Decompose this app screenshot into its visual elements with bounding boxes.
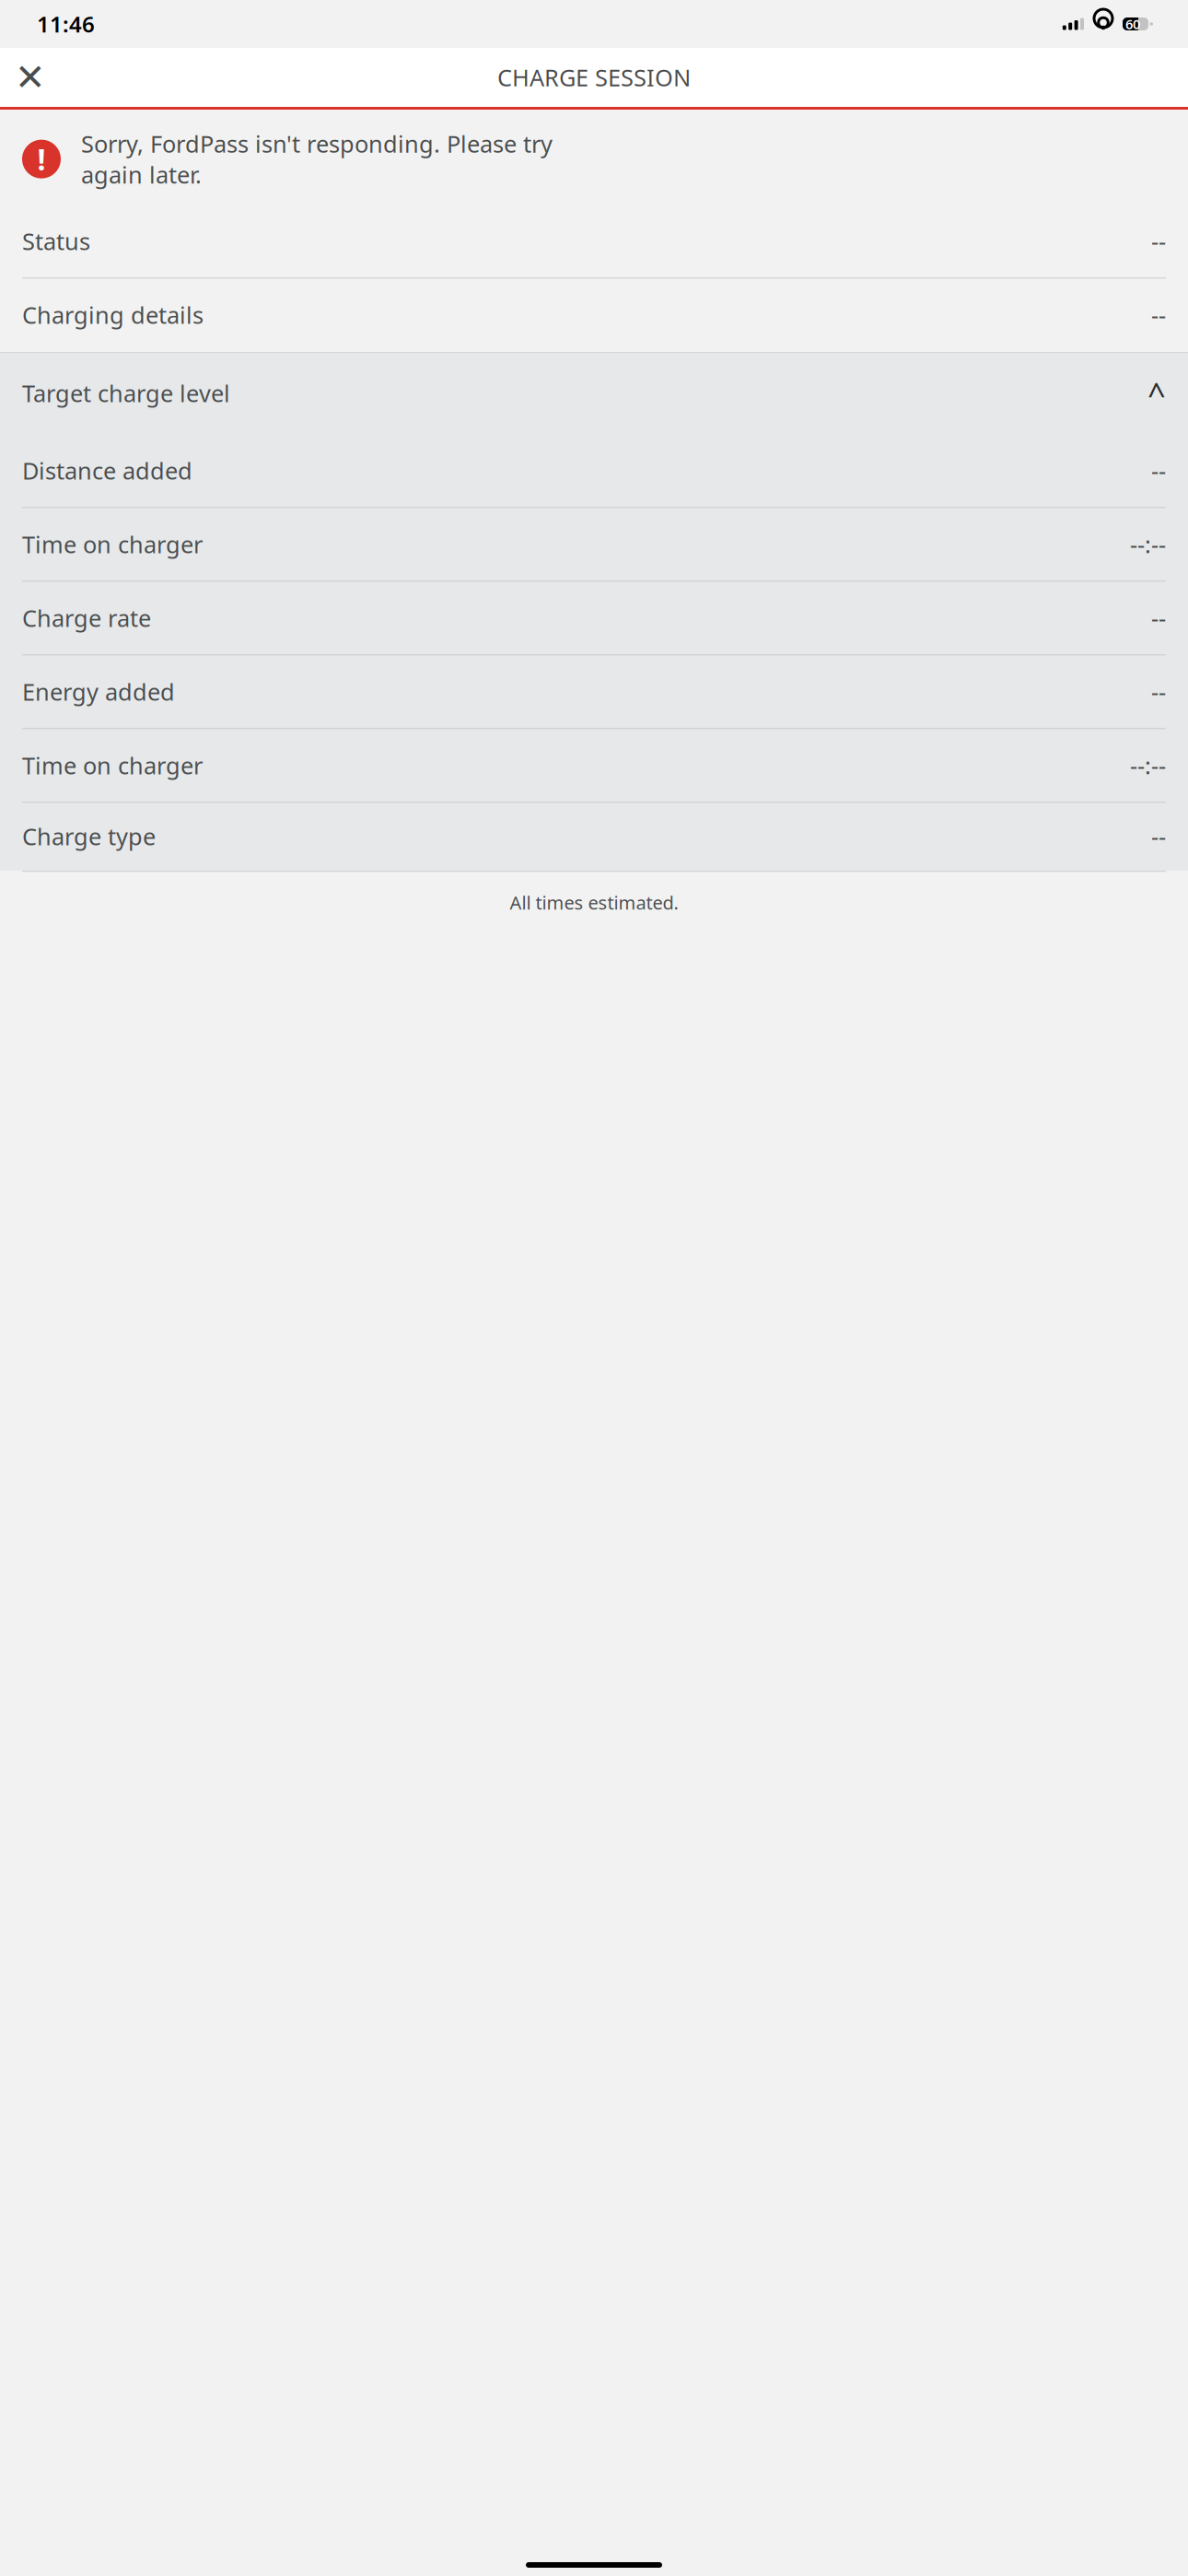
staticText: -- (1151, 821, 1166, 852)
staticText: Charging details (22, 299, 204, 330)
button[interactable]: Time on charger (0, 729, 1188, 803)
button[interactable]: Status (0, 205, 1188, 279)
staticText: All times estimated. (510, 890, 678, 915)
staticText: CHARGE SESSION (497, 62, 691, 93)
button[interactable]: Time on charger (0, 508, 1188, 582)
button[interactable]: Close (4, 51, 57, 104)
button[interactable]: Target charge level (0, 353, 1188, 434)
button[interactable]: Charging details (0, 279, 1188, 352)
staticText: 60 (1125, 15, 1140, 33)
staticText: --:-- (1130, 529, 1166, 560)
staticText: Energy added (22, 676, 175, 707)
staticText: ✕ (15, 56, 46, 98)
button[interactable]: Distance added (0, 434, 1188, 508)
staticText: 11:46 (37, 9, 95, 39)
staticText: --:-- (1130, 750, 1166, 781)
staticText: Time on charger (22, 529, 203, 560)
staticText: -- (1151, 603, 1166, 633)
staticText: -- (1151, 676, 1166, 707)
staticText: -- (1151, 226, 1166, 257)
button[interactable]: Charge type (0, 803, 1188, 871)
staticText: Distance added (22, 455, 192, 486)
staticText: Sorry, FordPass isn't responding. Please… (81, 128, 553, 190)
staticText: -- (1151, 299, 1166, 330)
staticText: Charge rate (22, 603, 151, 633)
staticText: ^ (1147, 372, 1166, 414)
staticText: ! (37, 139, 46, 179)
staticText: -- (1151, 455, 1166, 486)
button[interactable]: Energy added (0, 655, 1188, 729)
staticText: Charge type (22, 821, 156, 852)
staticText: Status (22, 226, 90, 257)
staticText: Target charge level (22, 378, 230, 409)
button[interactable]: Charge rate (0, 582, 1188, 655)
staticText: Time on charger (22, 750, 203, 781)
